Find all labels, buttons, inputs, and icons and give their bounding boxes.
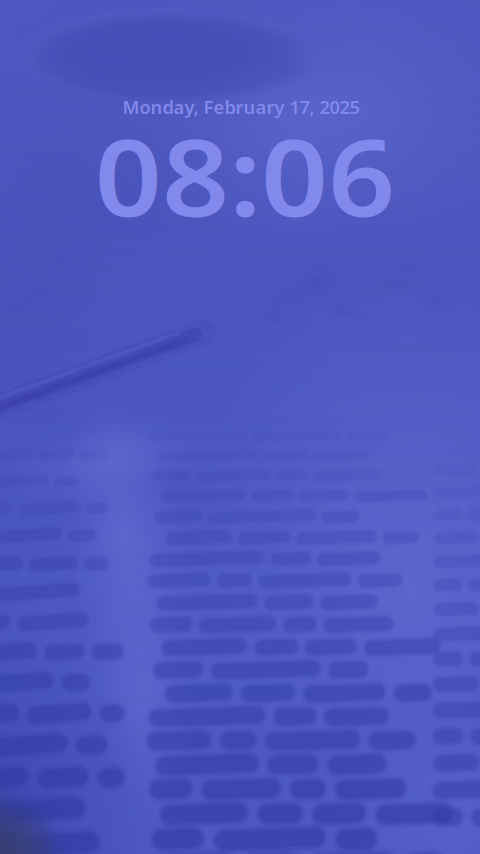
staticText: 08:06 (108, 102, 381, 248)
staticText: Monday, February 17, 2025 (122, 95, 359, 119)
